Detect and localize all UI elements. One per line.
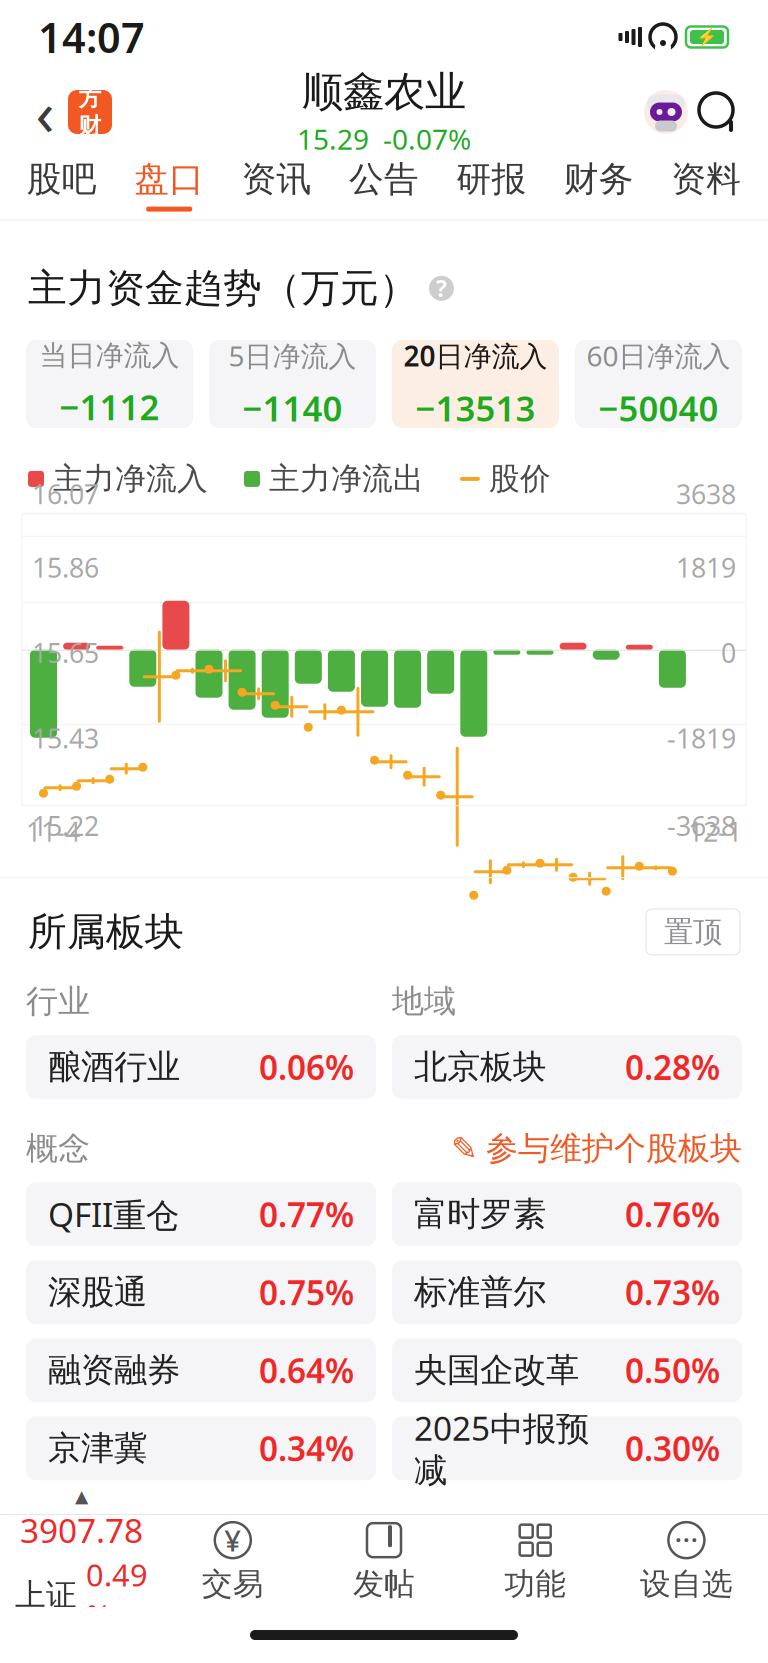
staticText: 资料	[671, 158, 741, 201]
staticText: 京津冀	[48, 1428, 147, 1469]
staticText: 地域	[392, 982, 456, 1021]
staticText: 14:07	[38, 10, 145, 64]
staticText: 15.29	[297, 120, 369, 157]
button[interactable]: 股吧	[8, 150, 115, 220]
staticText: 60日净流入	[586, 337, 730, 374]
button[interactable]: 5日净流入	[209, 340, 376, 428]
staticText: 1819	[676, 550, 736, 585]
staticText: ?	[436, 273, 447, 303]
button[interactable]: 置顶	[646, 909, 740, 955]
staticText: 交易	[202, 1565, 264, 1603]
button[interactable]: 设自选	[611, 1515, 762, 1607]
button[interactable]: Back	[22, 81, 68, 143]
button[interactable]: 研报	[438, 150, 545, 220]
button[interactable]: 央国企改革	[392, 1338, 742, 1402]
staticText: -1819	[667, 720, 736, 756]
button[interactable]: 京津冀	[26, 1416, 376, 1480]
staticText: 0.28%	[625, 1045, 720, 1089]
staticText: -3638	[667, 808, 736, 843]
button[interactable]: East Money home	[68, 90, 112, 134]
button[interactable]: 20日净流入	[392, 340, 559, 428]
button[interactable]: 发帖	[308, 1515, 460, 1607]
button[interactable]: 北京板块	[392, 1035, 742, 1099]
staticText: −50040	[598, 385, 718, 431]
staticText: 0.49%	[86, 1554, 148, 1636]
button[interactable]: 盘口	[115, 150, 223, 220]
staticText: 0.75%	[259, 1270, 354, 1314]
button[interactable]: 融资融券	[26, 1338, 376, 1402]
staticText: QFII重仓	[48, 1192, 179, 1236]
staticText: 3907.78	[20, 1508, 143, 1552]
staticText: 11-4	[26, 814, 80, 849]
staticText: 15.22	[32, 808, 99, 843]
staticText: 12-1	[688, 814, 742, 849]
staticText: 置顶	[664, 914, 722, 950]
staticText: 上证	[15, 1576, 77, 1614]
staticText: 0.73%	[625, 1270, 720, 1314]
staticText: ▲	[75, 1486, 88, 1506]
button[interactable]: 60日净流入	[575, 340, 742, 428]
staticText: −1112	[59, 384, 159, 430]
staticText: 参与维护个股板块	[486, 1129, 742, 1168]
staticText: 财务	[564, 158, 634, 201]
staticText: 0.06%	[259, 1045, 354, 1089]
staticText: 央国企改革	[414, 1350, 579, 1391]
button[interactable]: 公告	[330, 150, 438, 220]
staticText: 主力资金趋势（万元）	[28, 265, 418, 312]
button[interactable]: ¥	[157, 1515, 308, 1607]
staticText: 所属板块	[28, 908, 184, 956]
staticText: 0.76%	[625, 1192, 720, 1236]
staticText: 0	[721, 635, 736, 670]
staticText: 融资融券	[48, 1350, 180, 1391]
button[interactable]: 标准普尔	[392, 1260, 742, 1324]
staticText: 0.77%	[259, 1192, 354, 1236]
button[interactable]: AI assistant	[642, 88, 690, 136]
staticText: −1140	[242, 385, 342, 431]
staticText: 3638	[676, 476, 736, 512]
staticText: 15.86	[32, 550, 99, 585]
staticText: ✎	[451, 1130, 478, 1167]
staticText: 15.43	[32, 720, 99, 756]
staticText: -0.07%	[383, 120, 471, 157]
staticText: 0.64%	[259, 1348, 354, 1392]
staticText: 深股通	[48, 1272, 147, 1313]
staticText: 20日净流入	[403, 337, 547, 374]
staticText: 研报	[456, 158, 526, 201]
staticText: 概念	[26, 1129, 90, 1168]
button[interactable]: 资料	[653, 150, 760, 220]
staticText: 标准普尔	[414, 1272, 546, 1313]
button[interactable]: ✎	[451, 1129, 742, 1168]
button[interactable]: QFII重仓	[26, 1182, 376, 1246]
staticText: 北京板块	[414, 1046, 546, 1087]
staticText: 0.34%	[259, 1426, 354, 1470]
staticText: ⚡	[696, 27, 718, 47]
staticText: 功能	[504, 1565, 566, 1603]
staticText: 5日净流入	[228, 337, 356, 374]
staticText: 发帖	[353, 1565, 415, 1603]
button[interactable]: 富时罗素	[392, 1182, 742, 1246]
button[interactable]: ▲	[6, 1515, 157, 1607]
staticText: 主力净流入	[53, 460, 208, 498]
staticText: 盘口	[134, 158, 204, 201]
button[interactable]: 资讯	[223, 150, 330, 220]
button[interactable]: 酿酒行业	[26, 1035, 376, 1099]
button[interactable]: 深股通	[26, 1260, 376, 1324]
staticText: 设自选	[640, 1565, 733, 1603]
staticText: 东方	[78, 56, 101, 112]
button[interactable]: 当日净流入	[26, 340, 193, 428]
staticText: 0.30%	[625, 1426, 720, 1470]
staticText: 股吧	[27, 158, 97, 201]
button[interactable]: 功能	[460, 1515, 611, 1607]
button[interactable]: Search	[690, 84, 746, 140]
button[interactable]: 2025中报预减	[392, 1416, 742, 1480]
staticText: −13513	[415, 385, 535, 431]
staticText: 股价	[489, 460, 551, 498]
staticText: 富时罗素	[414, 1194, 546, 1235]
staticText: 当日净流入	[39, 338, 179, 373]
staticText: 16.07	[32, 476, 99, 512]
button[interactable]: About main fund trend	[429, 273, 454, 303]
staticText: 公告	[349, 158, 419, 201]
staticText: 2025中报预减	[414, 1406, 589, 1491]
button[interactable]: 财务	[545, 150, 652, 220]
staticText: ‹	[35, 71, 54, 153]
